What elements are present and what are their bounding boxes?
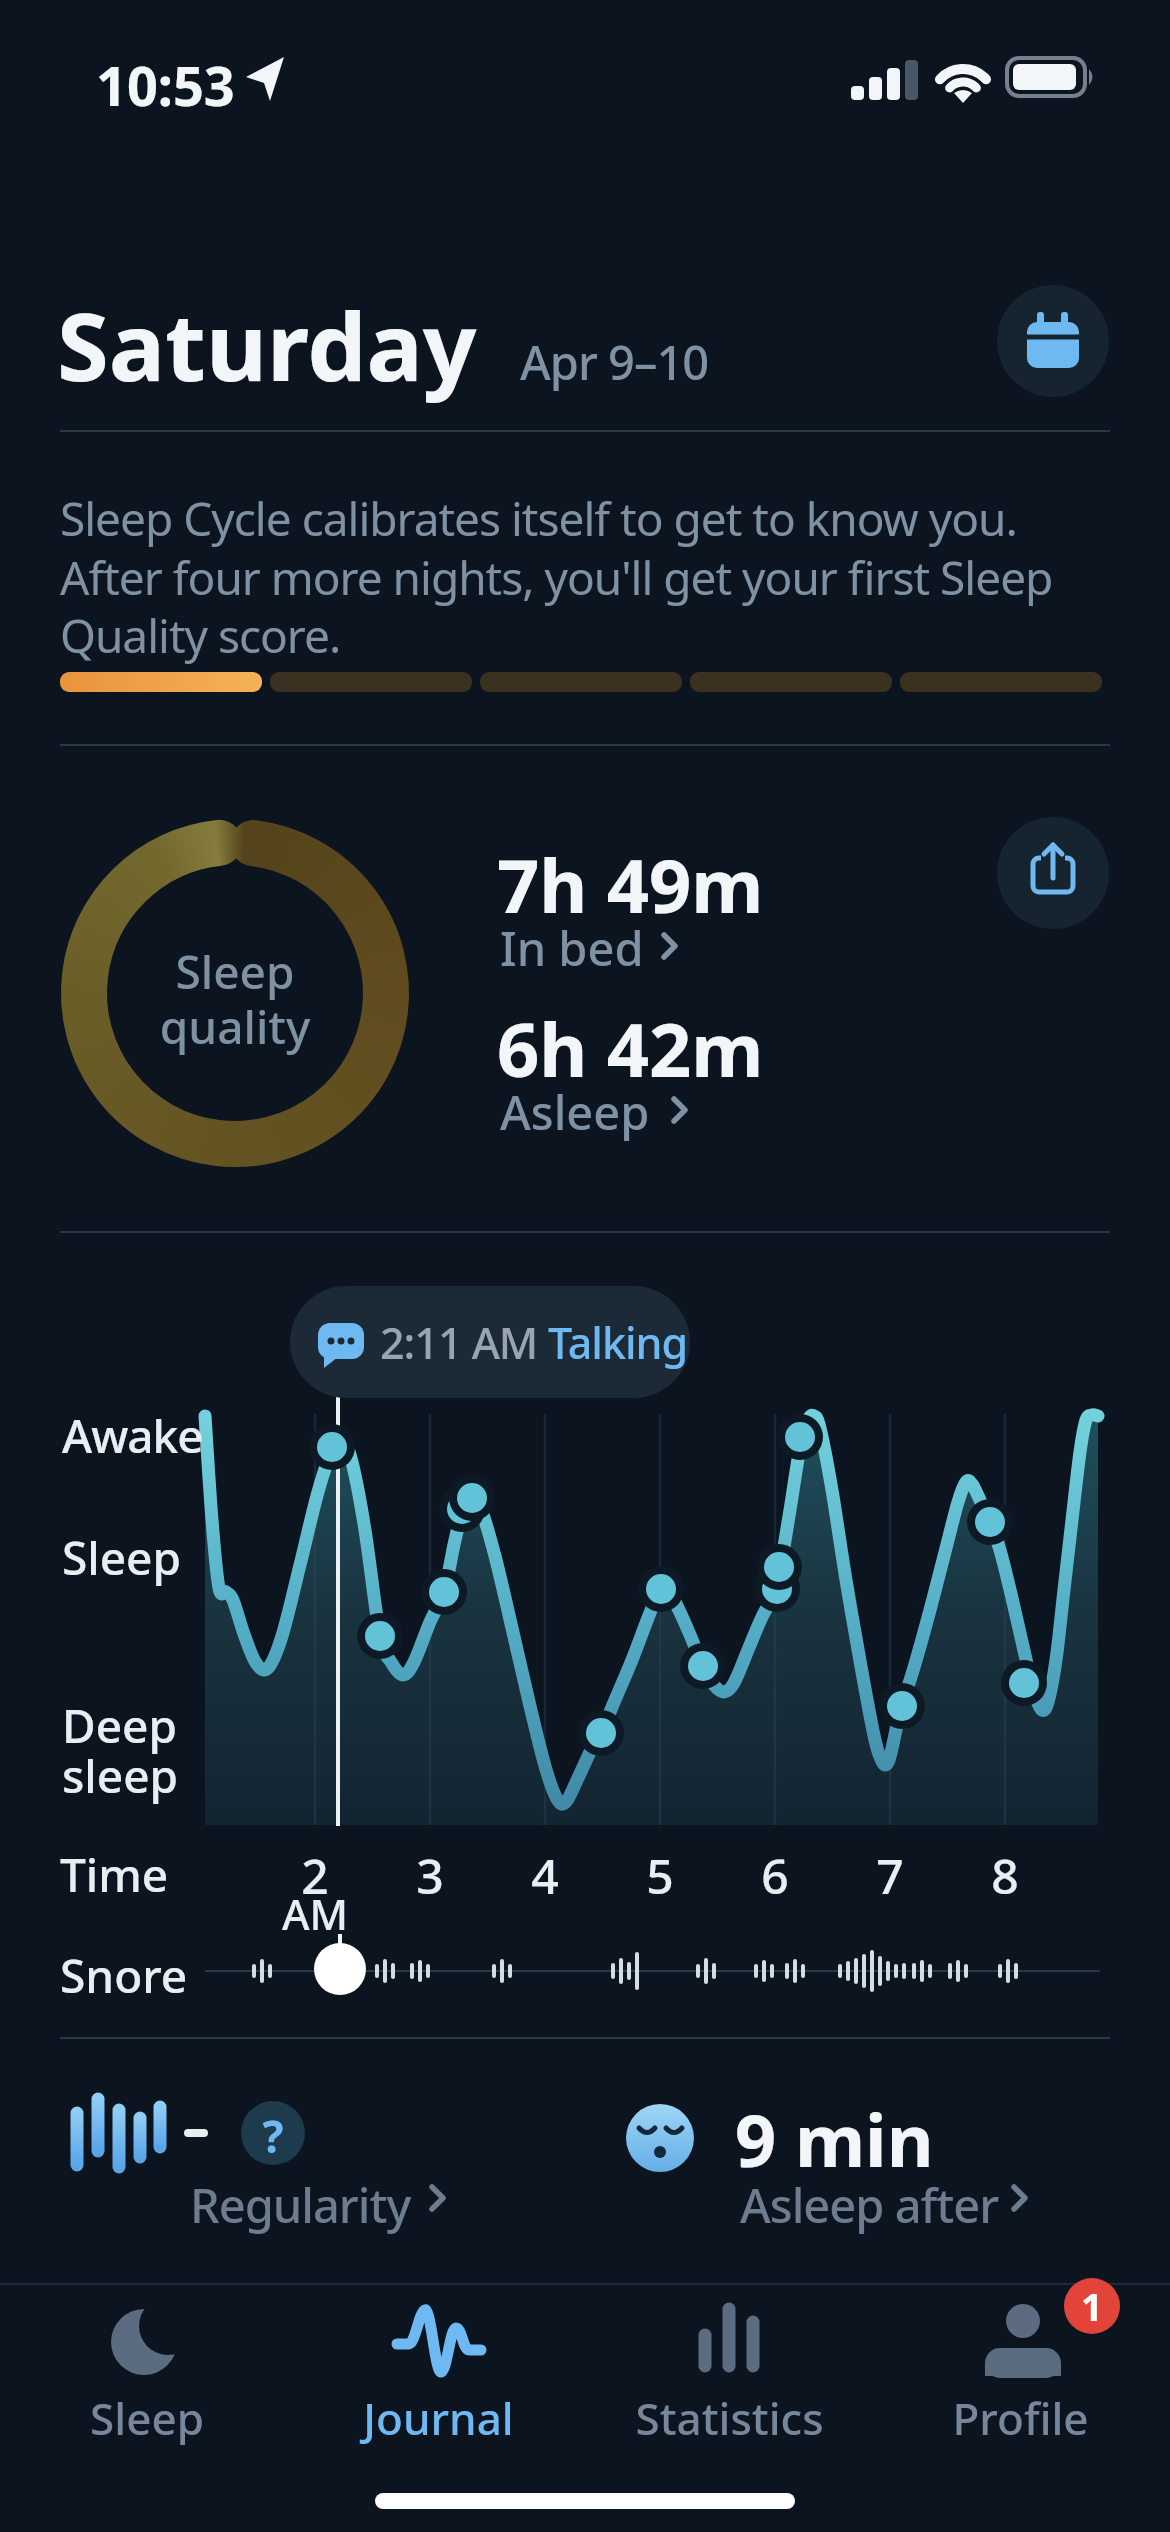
staticText: 1 [1081,2280,1103,2332]
staticText: Time [60,1843,169,1906]
staticText: 7 [860,1843,920,1908]
staticText: Talking [548,1313,688,1372]
staticText: Sleep quality [135,940,335,1058]
button[interactable] [997,285,1109,397]
button[interactable] [997,817,1109,929]
staticText: Statistics [635,2388,824,2448]
staticText: 8 [975,1843,1035,1908]
staticText: Journal [363,2388,514,2448]
staticText: Deep sleep [62,1694,179,1807]
button[interactable] [620,2085,1020,2235]
staticText: 2 [285,1843,345,1908]
staticText: 4 [515,1843,575,1908]
staticText: 6h 42m [497,998,764,1099]
staticText: 9 min [735,2090,934,2188]
staticText: In bed [500,916,644,980]
staticText: Sleep Cycle calibrates itself to get to … [60,487,1053,666]
button[interactable]: 7h 49m [490,832,770,982]
button[interactable]: 6h 42m [490,994,770,1144]
staticText: Apr 9–10 [520,330,709,394]
button[interactable]: Sleep [22,2286,272,2456]
button[interactable]: Journal [313,2286,563,2456]
staticText: Awake [62,1404,203,1467]
staticText: Regularity [190,2173,411,2237]
staticText: Asleep after [740,2173,999,2237]
staticText: AM [265,1885,365,1942]
staticText: ? [248,2106,298,2166]
staticText: Snore [60,1944,188,2007]
button[interactable]: Statistics [604,2286,854,2456]
staticText: 7h 49m [497,834,764,935]
button[interactable] [70,2085,430,2235]
staticText: 6 [745,1843,805,1908]
staticText: Sleep [90,2388,204,2448]
button[interactable]: 2:11 AM [290,1286,690,1398]
staticText: Profile [952,2388,1089,2448]
staticText: Saturday [57,281,477,409]
staticText: Sleep [62,1526,182,1589]
button[interactable]: Profile [895,2286,1145,2456]
staticText: 5 [630,1843,690,1908]
staticText: 10:53 [96,48,235,122]
staticText: 2:11 AM [380,1313,548,1372]
staticText: Asleep [500,1080,650,1144]
staticText: 3 [400,1843,460,1908]
